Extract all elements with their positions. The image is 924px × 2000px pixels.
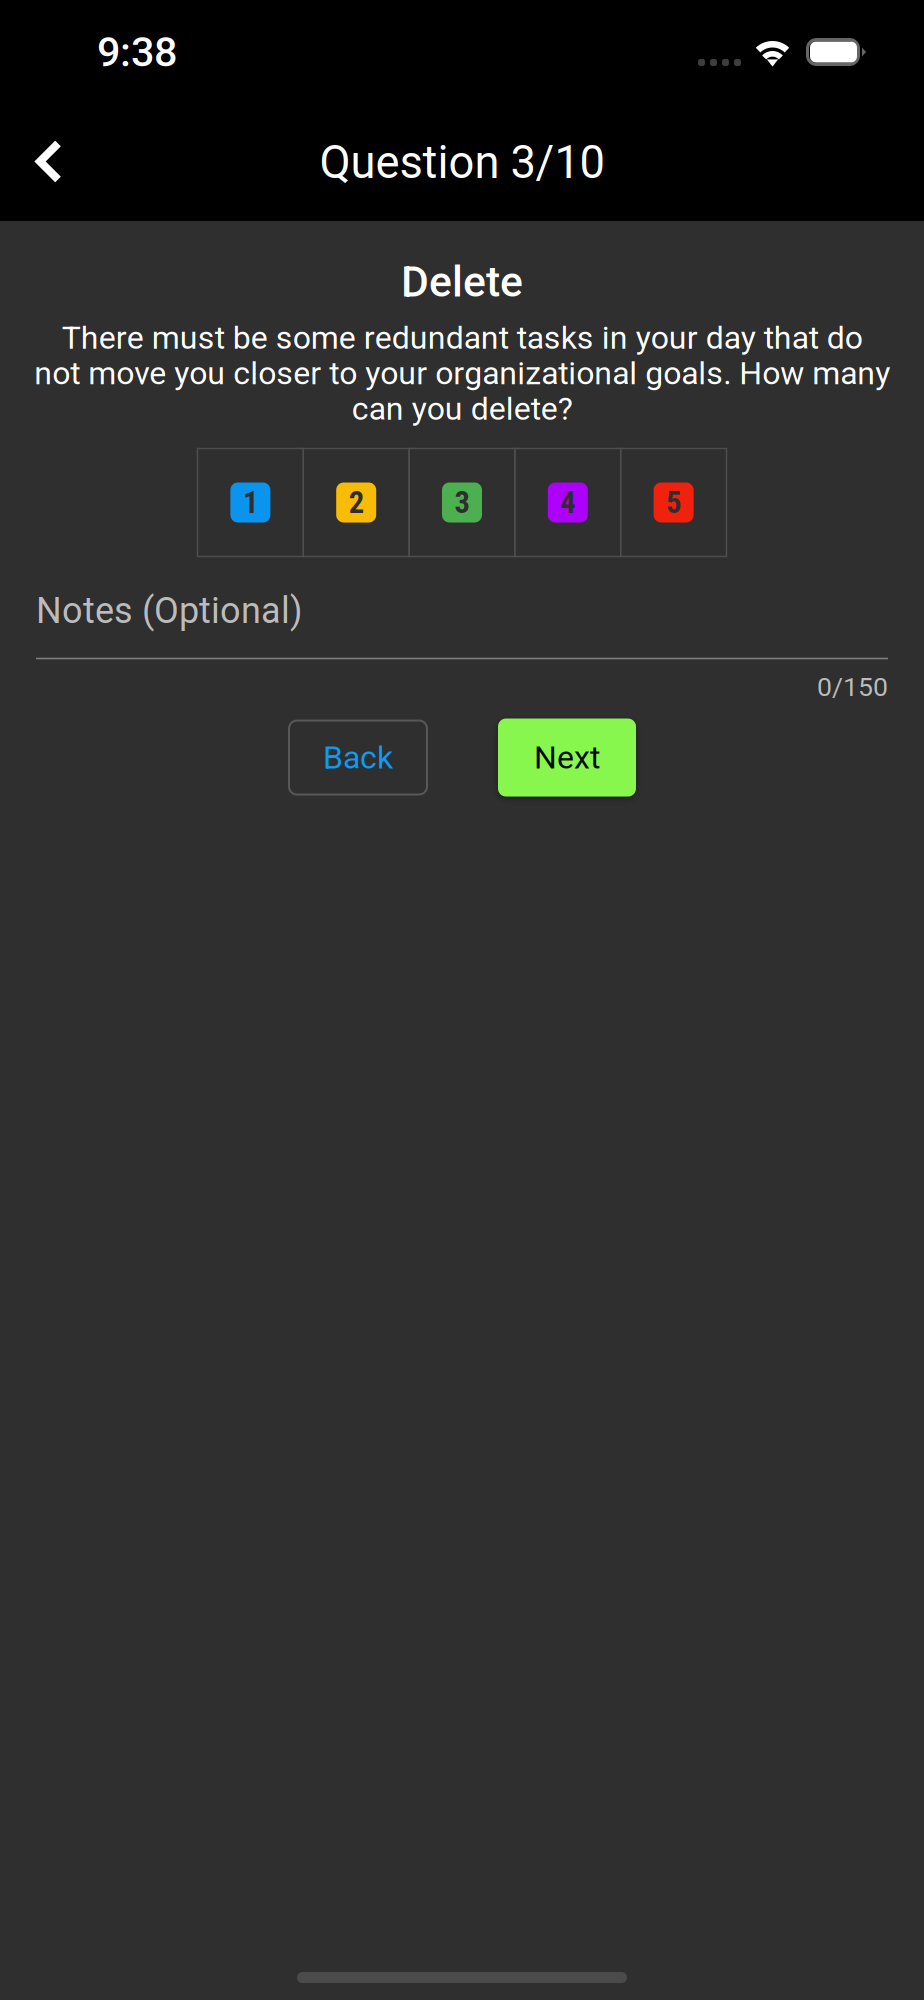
button[interactable]: 3 [409, 448, 515, 556]
button[interactable]: 5 [621, 448, 726, 556]
button[interactable]: 4 [515, 448, 621, 556]
staticText: Delete [401, 257, 523, 307]
staticText: 5 [666, 484, 681, 520]
staticText: 3 [454, 484, 469, 520]
staticText: 2 [349, 484, 364, 520]
staticText: Next [534, 739, 600, 776]
staticText: Back [323, 739, 393, 776]
staticText: There must be some redundant tasks in yo… [34, 319, 890, 427]
button[interactable]: Notes (Optional) [36, 556, 888, 659]
staticText: Notes (Optional) [36, 589, 303, 632]
button[interactable]: Back [0, 93, 96, 193]
button[interactable]: Next [498, 718, 636, 796]
staticText: 9:38 [97, 28, 177, 76]
staticText: 1 [243, 484, 258, 520]
button[interactable]: Back [288, 719, 428, 795]
staticText: Question 3/10 [319, 136, 604, 189]
staticText: 4 [560, 484, 575, 520]
staticText: 0/150 [817, 671, 888, 703]
button[interactable]: 2 [303, 448, 409, 556]
button[interactable]: 1 [197, 448, 303, 556]
